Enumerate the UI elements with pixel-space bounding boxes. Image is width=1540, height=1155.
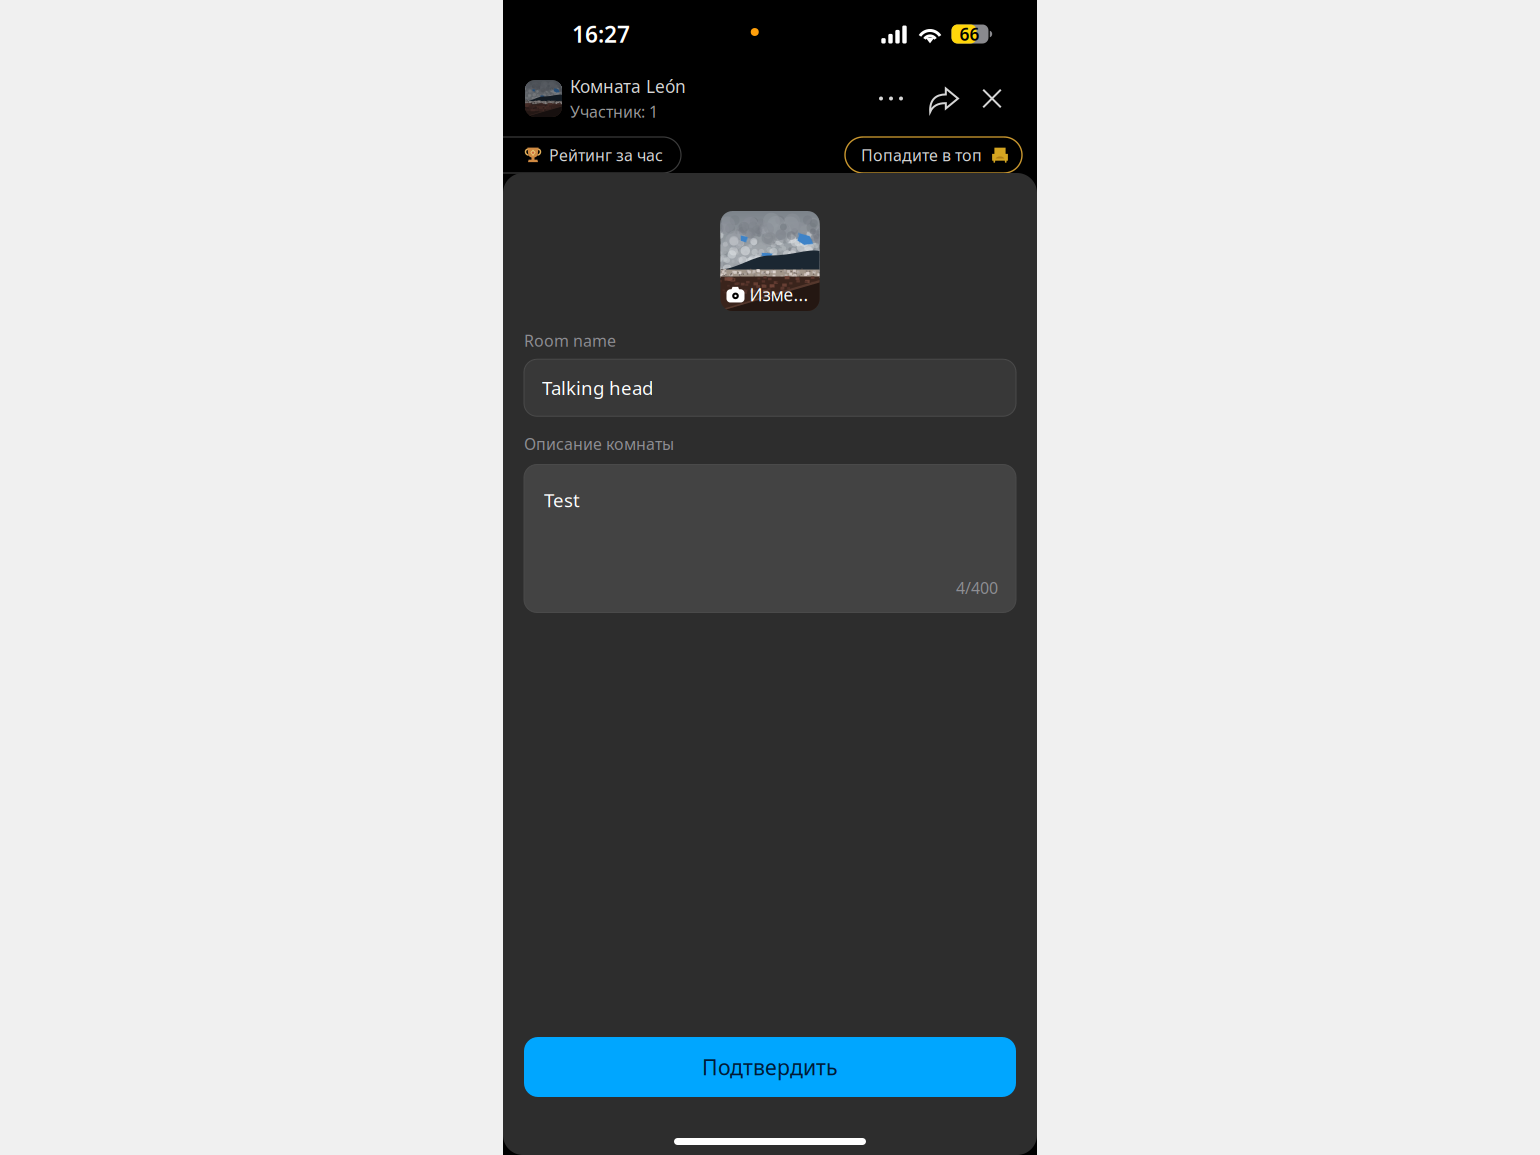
button[interactable]: Рейтинг за час xyxy=(482,137,681,173)
staticText: 16:27 xyxy=(572,19,630,49)
button[interactable]: More options xyxy=(879,86,903,110)
staticText: Рейтинг за час xyxy=(549,144,663,166)
staticText: Описание комнаты xyxy=(524,433,674,454)
staticText: Talking head xyxy=(542,375,653,400)
staticText: Test xyxy=(544,487,580,512)
staticText: 4/400 xyxy=(956,577,998,598)
staticText: Участник: 1 xyxy=(570,101,658,122)
button[interactable]: Share xyxy=(929,84,958,113)
staticText: Room name xyxy=(524,330,616,351)
button[interactable]: Комната León xyxy=(525,72,686,122)
button[interactable]: Close xyxy=(982,88,1002,108)
button[interactable]: Change room photo xyxy=(720,211,819,311)
staticText: 66 xyxy=(959,22,979,45)
staticText: Комната León xyxy=(570,75,686,98)
button[interactable]: Talking head xyxy=(524,359,1016,416)
staticText: Изме... xyxy=(749,283,808,306)
button[interactable]: Попадите в топ xyxy=(845,137,1022,173)
button[interactable]: Подтвердить xyxy=(524,1037,1016,1097)
staticText: Попадите в топ xyxy=(861,144,982,166)
button[interactable]: Test xyxy=(524,464,1016,612)
staticText: Подтвердить xyxy=(702,1053,838,1081)
